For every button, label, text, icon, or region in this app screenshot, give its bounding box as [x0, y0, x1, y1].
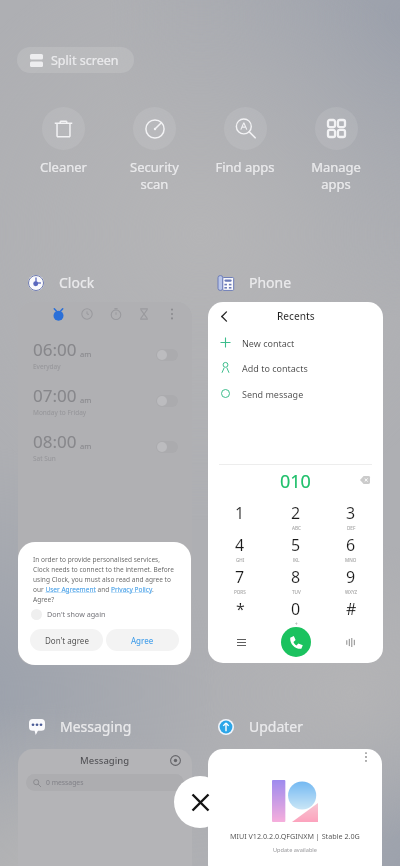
staticText: TUV — [292, 589, 301, 594]
staticText: Agree — [131, 635, 154, 646]
staticText: PQRS — [234, 589, 246, 594]
staticText: Clock — [59, 273, 95, 292]
staticText: am — [80, 349, 92, 359]
button[interactable]: Back — [215, 307, 233, 325]
staticText: 7 — [235, 566, 245, 588]
button[interactable]: Call — [281, 627, 311, 657]
staticText: 6 — [346, 534, 356, 556]
staticText: Security scan — [130, 158, 179, 193]
staticText: GHI — [236, 557, 245, 562]
button[interactable]: 6 — [327, 534, 375, 562]
button[interactable]: 7 — [216, 566, 264, 594]
staticText: Cleaner — [40, 158, 87, 176]
button[interactable]: Manage apps — [293, 107, 379, 193]
button[interactable]: Security scan — [111, 107, 197, 193]
staticText: Find apps — [215, 158, 275, 176]
button[interactable]: More options — [359, 750, 373, 764]
staticText: Messaging — [80, 754, 130, 767]
button[interactable]: 4 — [216, 534, 264, 562]
staticText: Update available — [273, 846, 317, 854]
staticText: MNO — [345, 557, 357, 562]
button[interactable]: Send message — [219, 383, 383, 404]
button[interactable]: * — [216, 598, 264, 626]
button[interactable]: 8 — [272, 566, 320, 594]
staticText: 4 — [235, 534, 245, 556]
button[interactable]: Phone — [218, 273, 292, 292]
button[interactable]: 06:00 — [33, 338, 178, 371]
staticText: Messaging — [60, 717, 132, 736]
button[interactable]: 1 — [216, 502, 264, 530]
staticText: Don't agree — [45, 635, 89, 646]
staticText: Monday to Friday — [33, 408, 87, 417]
button[interactable]: Add to contacts — [219, 357, 383, 378]
staticText: 06:00 — [33, 338, 77, 361]
staticText: * — [236, 598, 245, 620]
staticText: 8 — [291, 566, 301, 588]
staticText: ABC — [292, 525, 301, 530]
button[interactable]: 0 — [272, 598, 320, 626]
staticText: # — [346, 598, 357, 620]
button[interactable]: Call log — [230, 631, 252, 653]
staticText: WXYZ — [345, 589, 358, 594]
staticText: 07:00 — [33, 384, 77, 407]
button[interactable]: Back — [208, 302, 383, 663]
staticText: 010 — [280, 469, 311, 491]
button[interactable]: New contact — [219, 332, 383, 353]
button[interactable]: Updater — [218, 717, 304, 736]
button[interactable]: 0 messages — [26, 774, 184, 791]
button[interactable] — [156, 349, 178, 361]
button[interactable]: 3 — [327, 502, 375, 530]
staticText: Updater — [249, 717, 304, 736]
staticText: Split screen — [51, 52, 119, 69]
button[interactable] — [156, 441, 178, 453]
staticText: 2 — [291, 502, 301, 524]
button[interactable]: 2 — [272, 502, 320, 530]
staticText: JKL — [293, 557, 300, 562]
button[interactable]: Split screen — [17, 47, 134, 73]
staticText: Send message — [242, 388, 304, 400]
staticText: In order to provide personalised service… — [33, 555, 174, 604]
staticText: Recents — [277, 309, 315, 323]
button[interactable]: 06:00 — [18, 302, 192, 665]
staticText: 0 — [291, 598, 301, 620]
button[interactable]: Messaging — [18, 749, 192, 866]
staticText: 1 — [235, 502, 245, 524]
button[interactable]: Don't agree — [30, 629, 103, 651]
button[interactable]: More options — [208, 749, 382, 866]
button[interactable]: 5 — [272, 534, 320, 562]
staticText: New contact — [242, 337, 295, 349]
staticText: 9 — [346, 566, 356, 588]
staticText: am — [80, 395, 92, 405]
staticText: 0 messages — [46, 778, 84, 787]
button[interactable]: 08:00 — [33, 430, 178, 463]
button[interactable] — [156, 395, 178, 407]
staticText: 3 — [346, 502, 356, 524]
button[interactable]: Settings — [168, 753, 182, 767]
button[interactable]: Messaging — [29, 717, 132, 736]
staticText: Add to contacts — [242, 362, 308, 374]
staticText: Phone — [249, 273, 292, 292]
button[interactable]: Agree — [106, 629, 179, 651]
staticText: Everyday — [33, 362, 61, 371]
staticText: + — [295, 621, 298, 626]
button[interactable]: Keypad — [339, 631, 361, 653]
button[interactable]: Don't show again — [31, 606, 106, 622]
staticText: 08:00 — [33, 430, 77, 453]
button[interactable]: Cleaner — [20, 107, 106, 176]
staticText: Sat Sun — [33, 454, 56, 463]
button[interactable]: 9 — [327, 566, 375, 594]
button[interactable]: Find apps — [202, 107, 288, 176]
button[interactable]: Close all — [174, 776, 226, 828]
button[interactable]: Clock — [28, 273, 95, 292]
button[interactable]: Backspace — [358, 473, 372, 487]
staticText: 5 — [291, 534, 301, 556]
button[interactable]: 07:00 — [33, 384, 178, 417]
staticText: Don't show again — [47, 609, 106, 619]
staticText: Manage apps — [311, 158, 361, 193]
staticText: DEF — [347, 525, 356, 530]
staticText: am — [80, 441, 92, 451]
button[interactable]: # — [327, 598, 375, 626]
staticText: MIUI V12.0.2.0.QFGINXM | Stable 2.0G — [230, 831, 360, 841]
